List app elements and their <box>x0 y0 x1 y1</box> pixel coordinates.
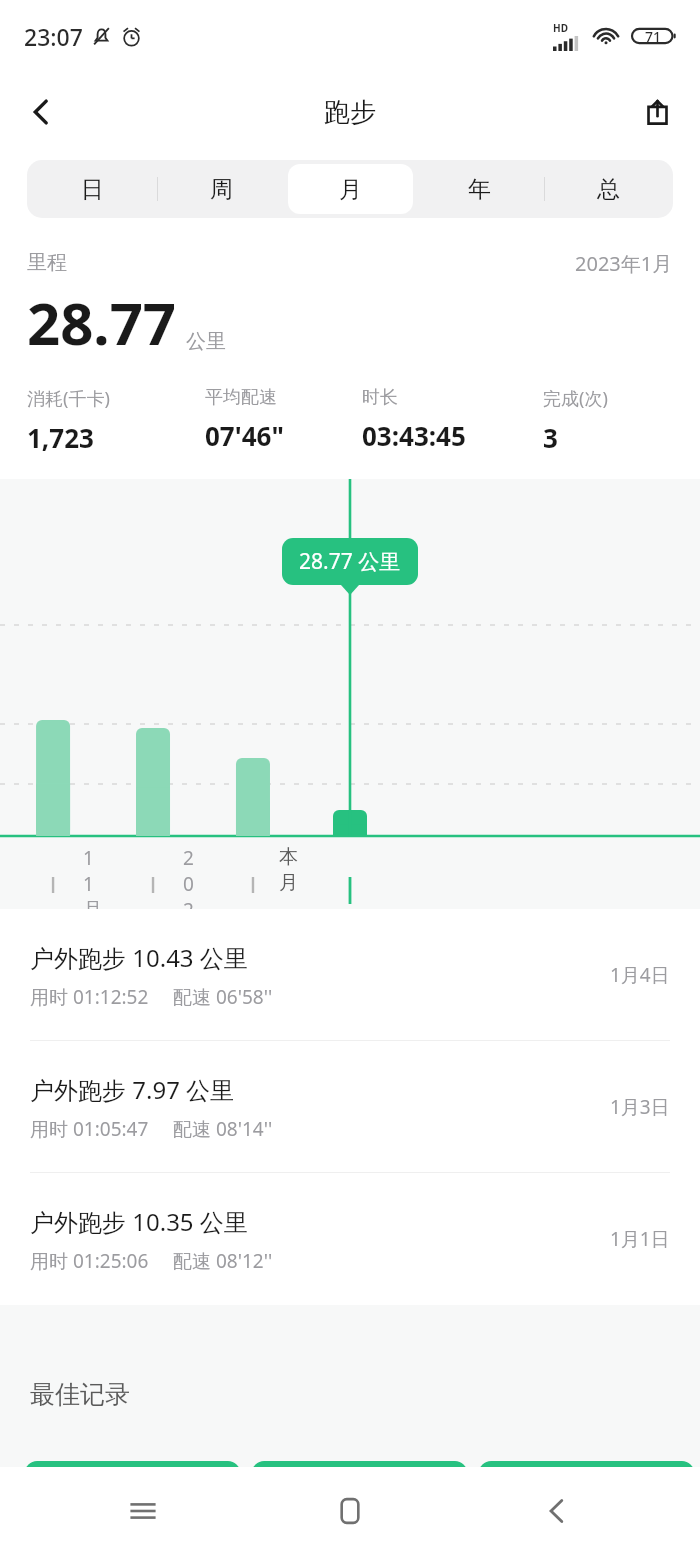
staticText: 户外跑步 10.35 公里 <box>30 1205 248 1238</box>
staticText: 1月4日 <box>610 962 670 988</box>
staticText: 消耗(千卡) <box>27 386 110 411</box>
staticText: 本月 <box>279 845 280 895</box>
button[interactable] <box>252 1461 467 1485</box>
staticText: 公里 <box>186 329 226 354</box>
staticText: 1,723 <box>27 420 94 455</box>
button[interactable]: Back <box>524 1478 590 1544</box>
staticText: 07'46" <box>205 418 284 453</box>
staticText: 户外跑步 7.97 公里 <box>30 1073 235 1106</box>
button[interactable]: 周 <box>157 160 286 218</box>
staticText: 71 <box>645 27 662 46</box>
button[interactable]: 总 <box>544 160 673 218</box>
button[interactable]: 日 <box>27 160 157 218</box>
button[interactable] <box>25 1461 240 1485</box>
staticText: 用时 01:25:06 配速 08'12'' <box>30 1248 273 1274</box>
staticText: 完成(次) <box>543 386 608 411</box>
staticText: 跑步 <box>324 96 376 129</box>
button[interactable]: 户外跑步 10.35 公里 <box>0 1173 700 1305</box>
button[interactable]: Home <box>317 1478 383 1544</box>
button[interactable] <box>479 1461 694 1485</box>
staticText: 1月3日 <box>610 1094 670 1120</box>
staticText: 最佳记录 <box>30 1379 130 1410</box>
staticText: 里程 <box>27 250 67 275</box>
button[interactable]: 月 <box>286 160 415 218</box>
staticText: 日 <box>81 175 104 204</box>
button[interactable]: Share <box>628 83 686 141</box>
staticText: 月 <box>339 175 362 204</box>
staticText: 周 <box>210 175 233 204</box>
staticText: 用时 01:12:52 配速 06'58'' <box>30 984 273 1010</box>
button[interactable]: 户外跑步 10.43 公里 <box>0 909 700 1041</box>
button[interactable]: Recent apps <box>110 1478 176 1544</box>
staticText: 2023年1月 <box>575 250 673 277</box>
staticText: 2022年12月 <box>183 845 184 1052</box>
button[interactable]: Back <box>12 83 70 141</box>
staticText: 28.77 <box>27 283 177 362</box>
staticText: 总 <box>597 175 620 204</box>
staticText: 户外跑步 10.43 公里 <box>30 941 248 974</box>
staticText: 28.77 公里 <box>299 547 401 576</box>
staticText: HD <box>553 21 568 35</box>
staticText: 平均配速 <box>205 386 277 409</box>
button[interactable]: 年 <box>415 160 544 218</box>
button[interactable]: 户外跑步 7.97 公里 <box>0 1041 700 1173</box>
button[interactable]: 28.77 公里 <box>282 538 418 585</box>
staticText: 3 <box>543 420 558 455</box>
staticText: 年 <box>468 175 491 204</box>
staticText: 1月1日 <box>610 1226 670 1252</box>
staticText: 23:07 <box>24 21 83 52</box>
staticText: 03:43:45 <box>362 418 466 453</box>
staticText: 时长 <box>362 386 398 409</box>
staticText: 用时 01:05:47 配速 08'14'' <box>30 1116 273 1142</box>
